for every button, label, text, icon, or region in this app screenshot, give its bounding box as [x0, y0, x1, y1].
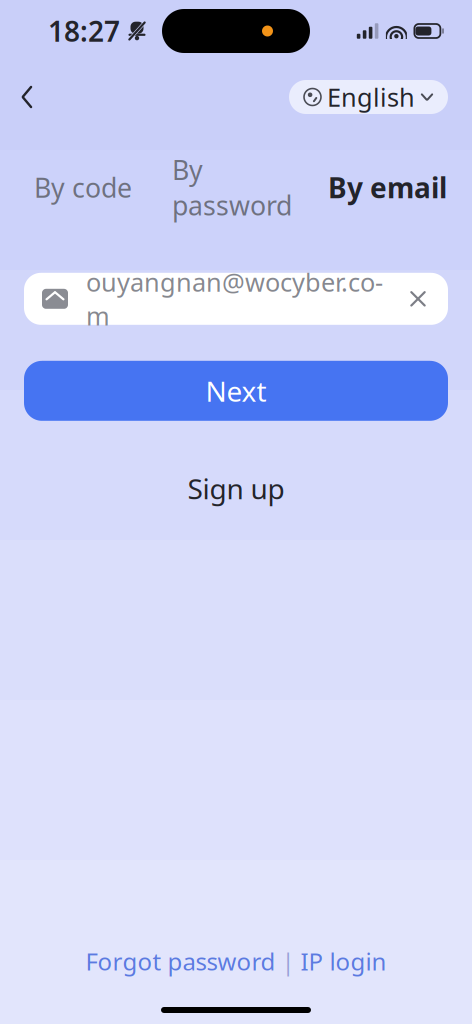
button[interactable]: Clear	[396, 277, 440, 321]
staticText: By code	[34, 170, 132, 205]
button[interactable]: Next	[24, 361, 448, 421]
staticText: By password	[172, 152, 292, 223]
button[interactable]: By password	[172, 142, 292, 233]
button[interactable]: IP login	[300, 937, 386, 985]
button[interactable]: By email	[328, 159, 447, 216]
staticText: English	[327, 80, 415, 114]
staticText: Sign up	[187, 470, 284, 507]
staticText: IP login	[300, 945, 386, 977]
button[interactable]: Back	[0, 75, 54, 119]
staticText: 18:27	[48, 12, 120, 50]
button[interactable]: Forgot password	[85, 937, 275, 985]
button[interactable]: English	[289, 80, 448, 114]
button[interactable]: Sign up	[165, 460, 306, 517]
staticText: By email	[328, 169, 447, 206]
staticText: ouyangnan@wocyber.com	[86, 265, 383, 332]
button[interactable]: By code	[34, 160, 132, 215]
staticText: Forgot password	[85, 945, 275, 977]
staticText: Next	[205, 372, 266, 409]
staticText: |	[275, 945, 300, 977]
